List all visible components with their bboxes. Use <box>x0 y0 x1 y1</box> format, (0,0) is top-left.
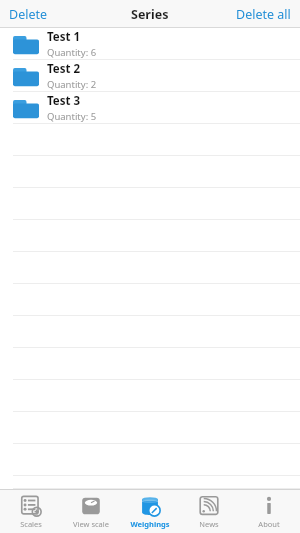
button[interactable]: Scales <box>3 490 59 533</box>
staticText: News <box>199 519 219 529</box>
staticText: View scale <box>73 519 109 529</box>
staticText: Delete <box>9 6 48 23</box>
button[interactable]: Test 1 <box>0 28 300 60</box>
button[interactable]: Test 3 <box>0 92 300 124</box>
staticText: Weighings <box>130 519 170 529</box>
staticText: Test 1 <box>47 29 81 45</box>
button[interactable]: About <box>241 490 297 533</box>
staticText: Delete all <box>236 6 291 23</box>
button[interactable]: View scale <box>63 490 119 533</box>
button[interactable]: Delete all <box>227 2 300 27</box>
staticText: Test 2 <box>47 61 81 77</box>
staticText: Scales <box>20 519 42 529</box>
button[interactable]: Weighings <box>122 490 178 533</box>
staticText: Quantity: 5 <box>47 110 97 123</box>
staticText: Quantity: 6 <box>47 46 97 59</box>
button[interactable]: News <box>181 490 237 533</box>
staticText: About <box>258 519 280 529</box>
staticText: Quantity: 2 <box>47 78 97 91</box>
staticText: Test 3 <box>47 93 81 109</box>
button[interactable]: Delete <box>0 2 57 27</box>
button[interactable]: Test 2 <box>0 60 300 92</box>
staticText: Series <box>131 6 169 23</box>
